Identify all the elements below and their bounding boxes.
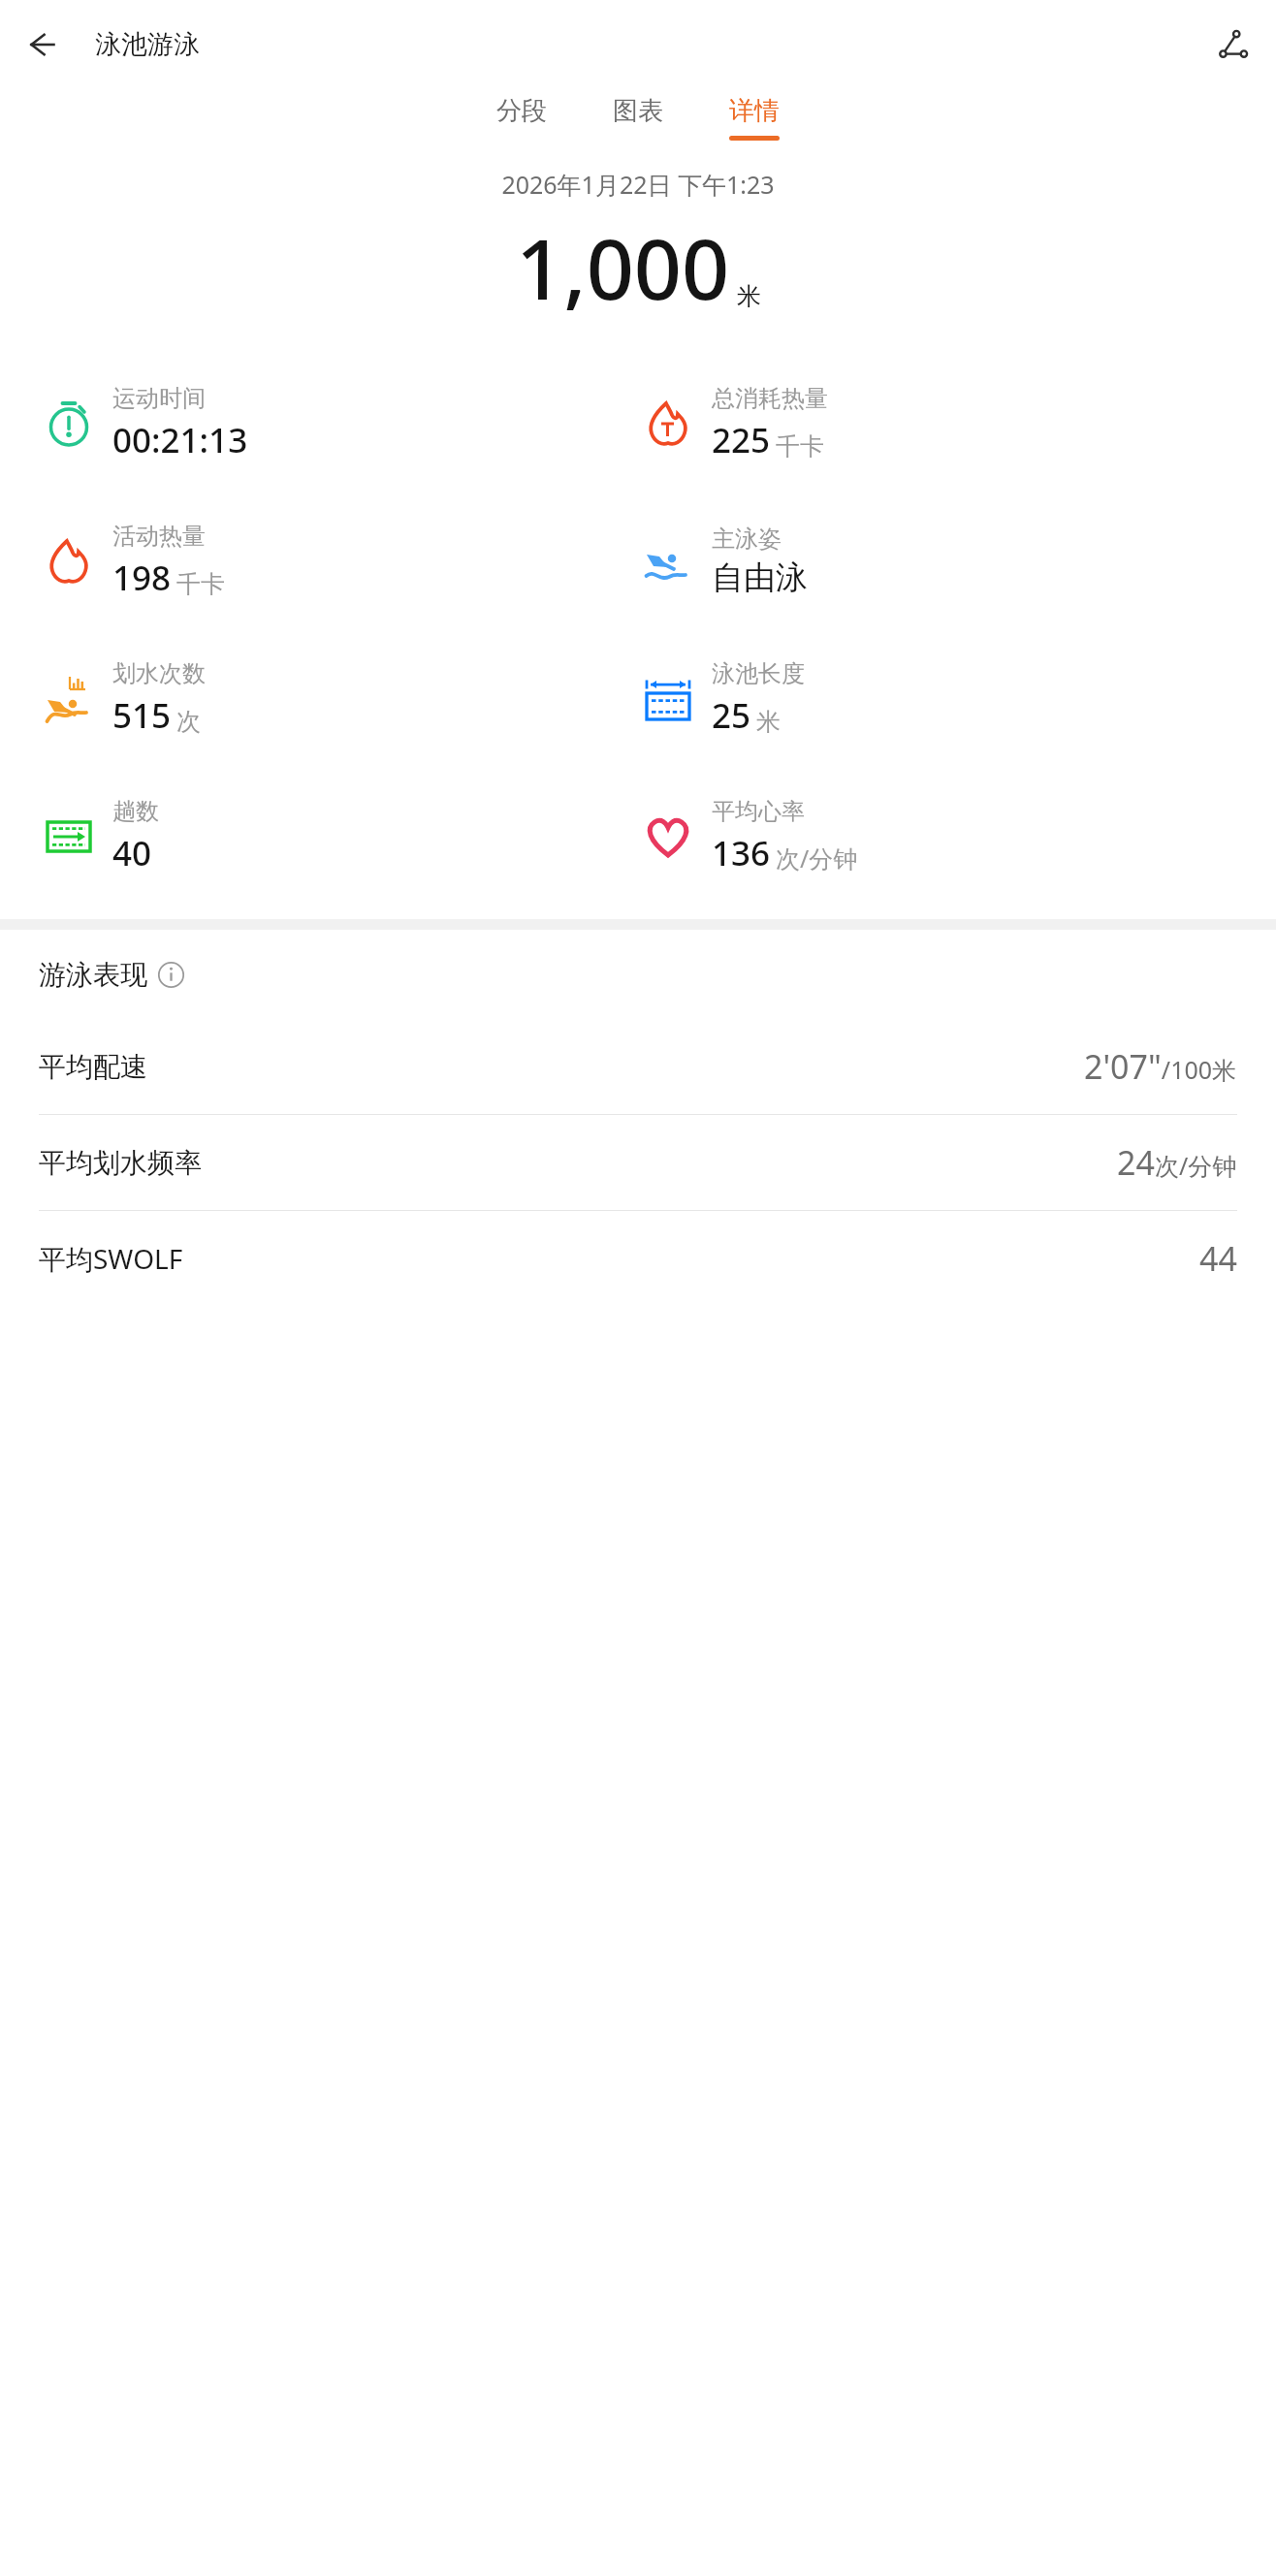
staticText: 千卡 <box>176 569 225 599</box>
staticText: 运动时间 <box>112 384 206 413</box>
staticText: 平均SWOLF <box>39 1240 183 1277</box>
button[interactable]: Share <box>1206 17 1260 72</box>
staticText: 136 <box>712 830 771 876</box>
button[interactable]: 趟数 <box>0 768 638 906</box>
staticText: 米 <box>737 281 761 311</box>
button[interactable]: 平均配速 <box>39 1019 1237 1114</box>
staticText: 总消耗热量 <box>712 384 828 413</box>
staticText: 40 <box>112 830 152 876</box>
staticText: 1,000 <box>516 210 730 324</box>
staticText: 泳池长度 <box>712 659 805 688</box>
staticText: 平均划水频率 <box>39 1146 202 1180</box>
button[interactable]: 主泳姿 <box>638 493 1276 630</box>
staticText: 2'07"/100米 <box>1084 1044 1237 1089</box>
staticText: 515 <box>112 692 172 739</box>
staticText: 详情 <box>729 95 780 127</box>
staticText: 198 <box>112 555 172 601</box>
staticText: 划水次数 <box>112 659 206 688</box>
staticText: 00:21:13 <box>112 417 248 463</box>
staticText: 趟数 <box>112 797 159 826</box>
button[interactable]: 平均心率 <box>638 768 1276 906</box>
staticText: 米 <box>756 707 781 737</box>
button[interactable]: 详情 <box>721 89 787 146</box>
staticText: 泳池游泳 <box>95 28 200 61</box>
staticText: 分段 <box>496 95 547 127</box>
staticText: 主泳姿 <box>712 525 782 554</box>
button[interactable]: Back <box>14 17 68 72</box>
button[interactable]: 游泳表现 <box>39 930 184 1019</box>
staticText: 自由泳 <box>712 557 808 598</box>
staticText: 225 <box>712 417 771 463</box>
button[interactable]: 运动时间 <box>0 355 638 493</box>
button[interactable]: 活动热量 <box>0 493 638 630</box>
button[interactable]: 分段 <box>489 89 555 146</box>
button[interactable]: 泳池长度 <box>638 630 1276 768</box>
button[interactable]: 平均SWOLF <box>39 1211 1237 1306</box>
button[interactable]: 总消耗热量 <box>638 355 1276 493</box>
staticText: 平均心率 <box>712 797 805 826</box>
button[interactable]: 划水次数 <box>0 630 638 768</box>
staticText: 2026年1月22日 下午1:23 <box>501 168 775 201</box>
staticText: 25 <box>712 692 751 739</box>
button[interactable]: 图表 <box>605 89 671 146</box>
staticText: 24次/分钟 <box>1117 1140 1237 1185</box>
staticText: 活动热量 <box>112 522 206 551</box>
staticText: 游泳表现 <box>39 958 147 992</box>
staticText: 次/分钟 <box>776 842 858 875</box>
staticText: 44 <box>1199 1236 1237 1281</box>
button[interactable]: 平均划水频率 <box>39 1115 1237 1210</box>
staticText: 次 <box>176 707 201 737</box>
staticText: 千卡 <box>776 431 824 461</box>
staticText: 平均配速 <box>39 1050 147 1084</box>
staticText: 图表 <box>613 95 663 127</box>
